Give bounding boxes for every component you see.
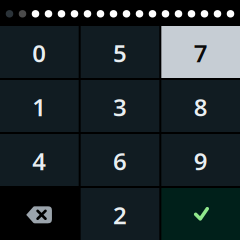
staticText: 1 xyxy=(32,91,46,123)
staticText: 6 xyxy=(113,145,127,177)
button[interactable]: 4 xyxy=(0,134,79,186)
button[interactable]: 5 xyxy=(81,26,159,78)
button[interactable]: Confirm xyxy=(161,188,240,240)
button[interactable]: 3 xyxy=(81,80,159,132)
staticText: 9 xyxy=(194,145,208,177)
staticText: 5 xyxy=(113,37,127,69)
staticText: 0 xyxy=(32,37,46,69)
staticText: 8 xyxy=(194,91,208,123)
staticText: 7 xyxy=(194,37,208,69)
staticText: 3 xyxy=(113,91,127,123)
button[interactable]: Delete xyxy=(0,188,79,240)
button[interactable]: 1 xyxy=(0,80,79,132)
staticText: 4 xyxy=(32,145,46,177)
button[interactable]: 9 xyxy=(161,134,240,186)
button[interactable]: 7 xyxy=(161,26,240,78)
button[interactable]: 0 xyxy=(0,26,79,78)
staticText: 2 xyxy=(113,199,127,231)
button[interactable]: 2 xyxy=(81,188,159,240)
button[interactable]: 6 xyxy=(81,134,159,186)
button[interactable]: 8 xyxy=(161,80,240,132)
